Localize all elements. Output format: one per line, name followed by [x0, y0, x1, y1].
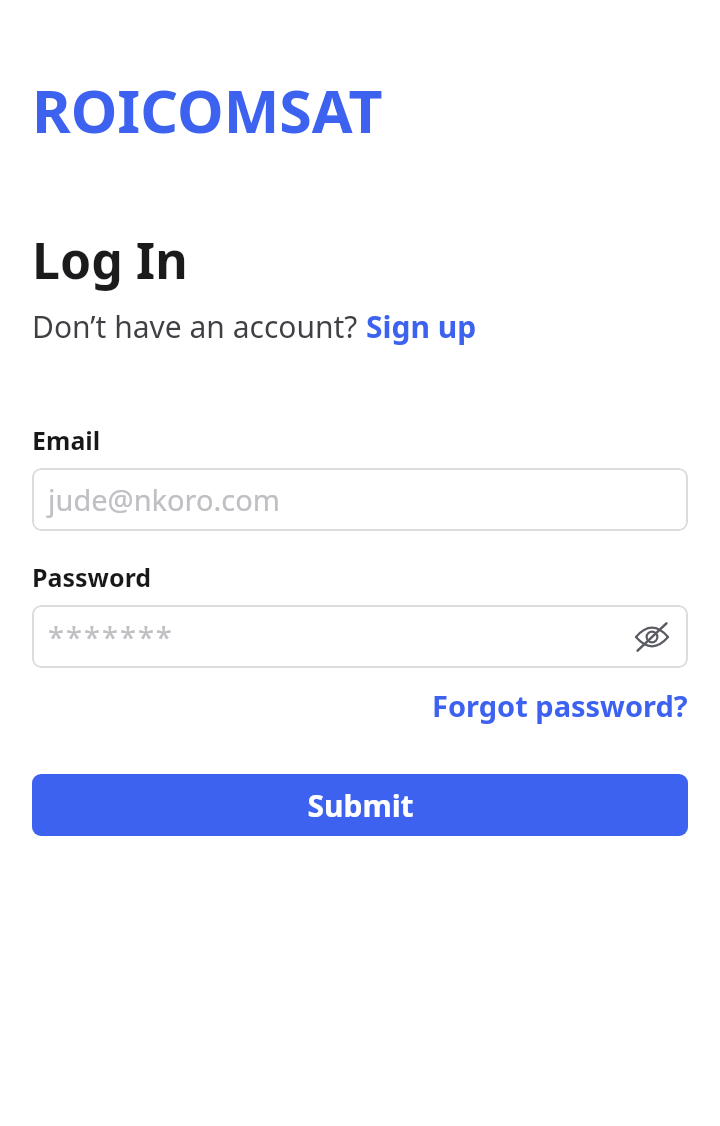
staticText: Log In: [32, 226, 188, 294]
staticText: Email: [32, 423, 101, 457]
button[interactable]: jude@nkoro.com: [32, 468, 688, 531]
staticText: Password: [32, 560, 152, 594]
staticText: Forgot password?: [432, 686, 688, 725]
staticText: Submit: [307, 785, 414, 826]
button[interactable]: Submit: [32, 774, 688, 836]
button[interactable]: Forgot password?: [432, 686, 688, 725]
staticText: jude@nkoro.com: [48, 480, 280, 519]
staticText: ROICOMSAT: [32, 70, 383, 150]
staticText: Sign up: [366, 306, 477, 347]
staticText: *******: [48, 617, 174, 656]
button[interactable]: *******: [32, 605, 688, 668]
button[interactable]: Hide password: [630, 615, 674, 659]
staticText: Don’t have an account?: [32, 306, 366, 347]
button[interactable]: Sign up: [366, 306, 477, 347]
